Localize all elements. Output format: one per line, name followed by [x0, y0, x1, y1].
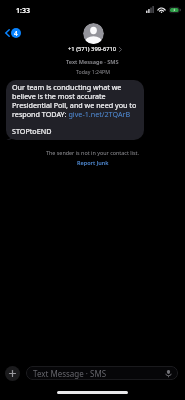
- button[interactable]: Our team is conducting what we believe i…: [6, 80, 144, 140]
- staticText: STOPtoEND: [12, 126, 52, 136]
- staticText: Text Message · SMS: [66, 58, 119, 66]
- staticText: Today 1:24PM: [76, 68, 110, 75]
- button[interactable]: +1 (571) 399-6710: [68, 45, 122, 53]
- button[interactable]: Contact details: [83, 23, 104, 44]
- button[interactable]: Add attachment: [5, 366, 20, 381]
- staticText: Report Junk: [77, 159, 109, 166]
- staticText: 1:33: [16, 6, 30, 16]
- staticText: +1 (571) 399-6710: [68, 45, 117, 53]
- staticText: The sender is not in your contact list.: [46, 149, 139, 156]
- button[interactable]: Text Message · SMS: [26, 366, 178, 380]
- button[interactable]: Dictate: [164, 369, 173, 378]
- button[interactable]: Report Junk: [77, 159, 109, 166]
- button[interactable]: Back: [2, 25, 24, 41]
- staticText: Text Message · SMS: [33, 368, 107, 379]
- staticText: Our team is conducting what we believe i…: [12, 82, 140, 119]
- staticText: 4: [14, 29, 18, 38]
